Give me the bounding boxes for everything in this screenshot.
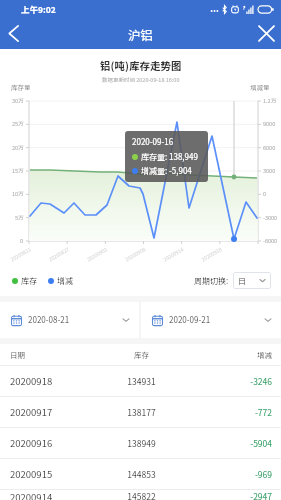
button[interactable]: Back [0,18,26,49]
staticText: 138177 [98,406,185,418]
button[interactable]: 20200917 [0,397,281,427]
staticText: 库存量 [11,82,31,91]
staticText: 2020-09-16 [132,136,174,148]
staticText: 增减 [185,349,272,360]
staticText: 20200916 [10,436,98,450]
staticText: 库存量: 138,949 [141,151,198,163]
staticText: -3246 [185,375,272,387]
staticText: 20200914 [10,490,98,500]
staticText: -5904 [185,437,272,449]
button[interactable]: 20200914 [0,490,281,500]
staticText: 2020-08-21 [28,314,70,326]
staticText: 20200915 [10,467,98,481]
staticText: 增减量: -5,904 [141,165,192,177]
staticText: 日 [238,275,246,287]
button[interactable]: 20200916 [0,428,281,458]
staticText: 2020-09-21 [169,314,211,326]
button[interactable]: 20200918 [0,366,281,396]
staticText: 数据更新时间 2020-09-18 16:00 [102,76,180,84]
staticText: 134931 [98,375,185,387]
staticText: 库存 [98,349,185,360]
staticText: 增减量 [250,82,270,91]
staticText: 铝(吨)库存走势图 [100,58,182,73]
button[interactable]: Close [251,18,281,49]
staticText: 日期 [10,349,98,360]
button[interactable]: 增减 [48,275,73,287]
button[interactable]: 2020-09-21 [141,302,281,338]
staticText: 上午9:02 [21,3,56,15]
staticText: 增减 [57,275,73,287]
button[interactable]: 日 [233,272,271,289]
staticText: 138949 [98,437,185,449]
staticText: 库存 [21,275,37,287]
button[interactable]: 2020-08-21 [0,302,139,338]
button[interactable]: 20200915 [0,459,281,489]
staticText: 20200918 [10,374,98,388]
button[interactable]: 库存 [12,275,37,287]
staticText: 沪铝 [128,25,154,43]
staticText: 144853 [98,468,185,480]
staticText: 周期切换: [194,275,229,287]
staticText: 145822 [98,490,185,500]
staticText: -969 [185,468,272,480]
staticText: 20200917 [10,405,98,419]
staticText: -2947 [185,490,272,500]
staticText: -772 [185,406,272,418]
